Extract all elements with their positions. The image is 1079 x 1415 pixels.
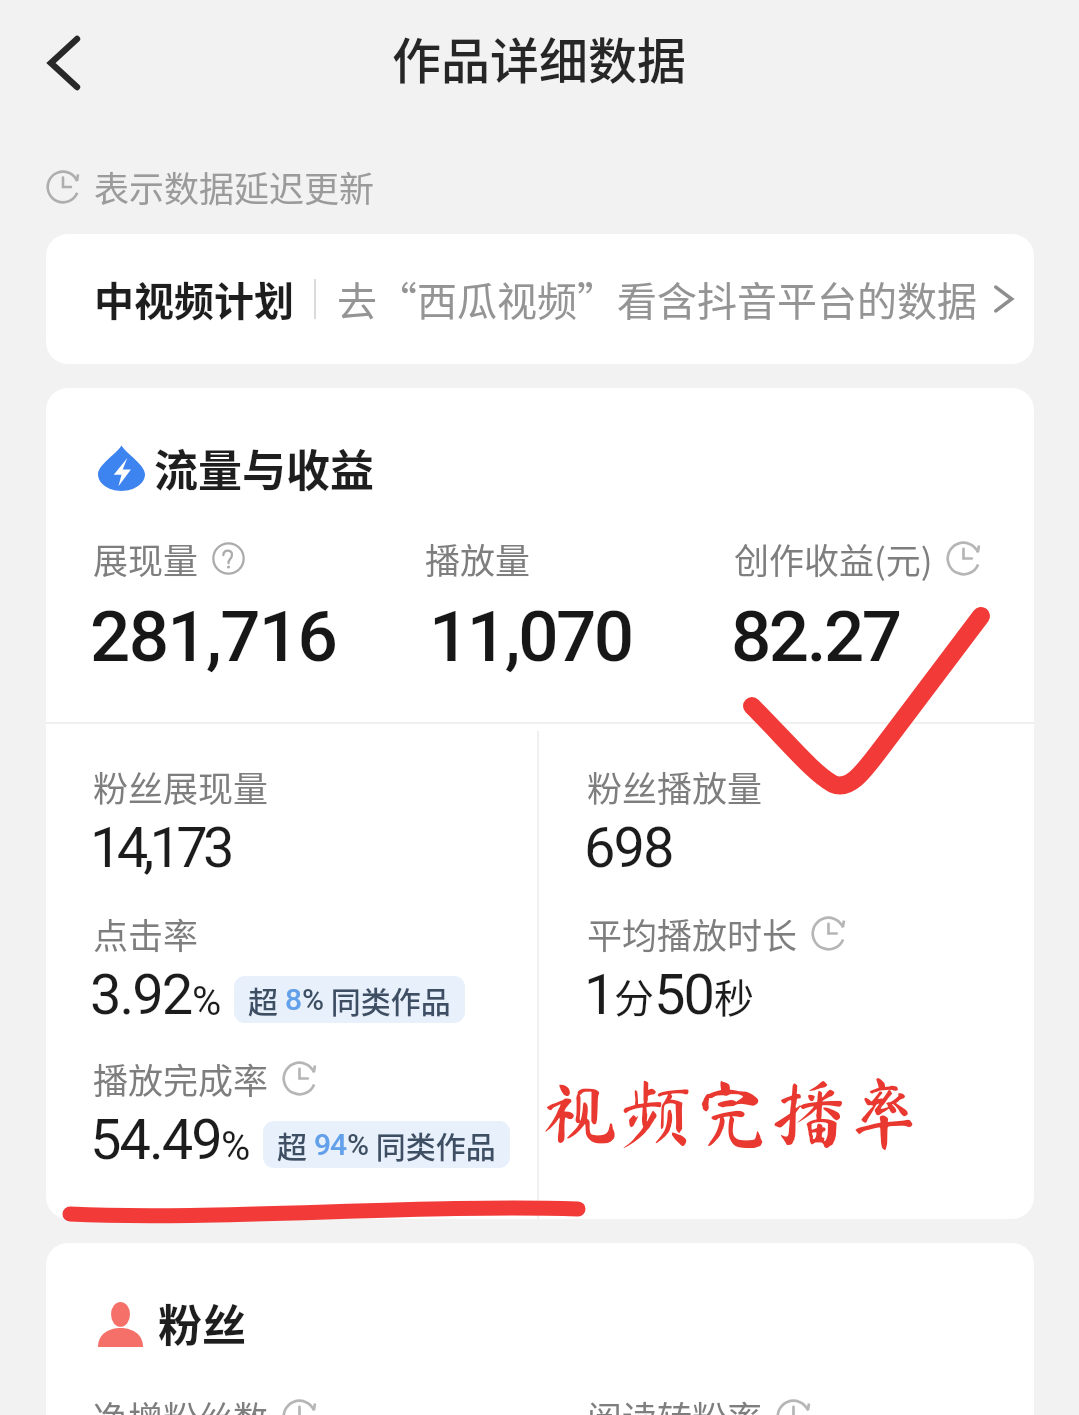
staticText: 粉丝展现量 [93, 761, 269, 812]
staticText: 创作收益(元) [734, 533, 933, 584]
staticText: 去“西瓜视频”看含抖音平台的数据 [337, 270, 977, 328]
staticText: 14,173 [90, 815, 230, 881]
staticText: 50 [654, 962, 714, 1028]
staticText: 同类作品 [324, 978, 451, 1021]
staticText: % [192, 978, 220, 1025]
staticText: 54.49 [90, 1107, 221, 1173]
staticText: 平均播放时长 [587, 908, 798, 959]
staticText: 流量与收益 [154, 436, 374, 500]
staticText: 表示数据延迟更新 [94, 161, 375, 212]
staticText: 94 [314, 1127, 347, 1162]
staticText: 粉丝播放量 [587, 761, 763, 812]
staticText: 展现量 [93, 533, 199, 584]
staticText: 播放量 [425, 533, 531, 584]
staticText: % [347, 1127, 369, 1162]
staticText: 视频完播率 [542, 1074, 922, 1150]
staticText: 同类作品 [369, 1123, 496, 1166]
staticText: 播放完成率 [93, 1053, 269, 1104]
staticText: 分 [614, 967, 654, 1025]
staticText: 281,716 [90, 595, 337, 678]
staticText: 8 [285, 982, 302, 1017]
staticText: % [221, 1123, 249, 1170]
staticText: % [302, 982, 324, 1017]
button[interactable]: Back [28, 27, 100, 99]
staticText: 中视频计划 [94, 270, 294, 328]
staticText: 粉丝 [158, 1291, 246, 1355]
staticText: 点击率 [93, 908, 199, 959]
staticText: 11,070 [429, 595, 632, 678]
staticText: 超 [277, 1123, 314, 1166]
staticText: 净增粉丝数 [93, 1391, 269, 1415]
staticText: 超 [248, 978, 285, 1021]
staticText: 作品详细数据 [392, 22, 687, 93]
staticText: 698 [584, 815, 673, 881]
staticText: 82.27 [731, 595, 900, 678]
staticText: 1 [584, 962, 614, 1028]
button[interactable]: 中视频计划 [46, 234, 1034, 364]
staticText: 3.92 [90, 962, 192, 1028]
staticText: 阅读转粉率 [587, 1391, 763, 1415]
staticText: 秒 [714, 967, 754, 1025]
button[interactable]: What is impressions [212, 542, 245, 575]
